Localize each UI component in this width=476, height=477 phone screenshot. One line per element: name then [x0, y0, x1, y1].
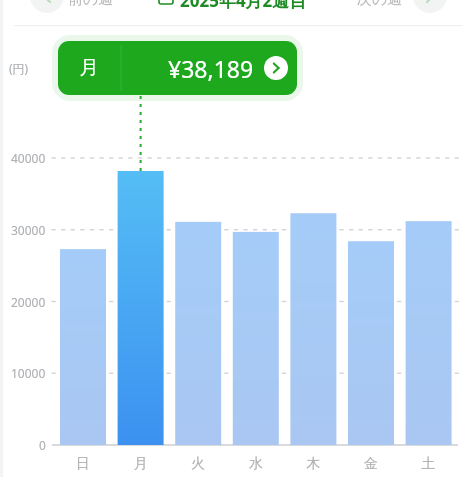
button[interactable]: 次の週 [350, 0, 460, 26]
button[interactable]: 月 ¥38,189 の詳細を見る [58, 41, 297, 95]
button[interactable]: 2025年4月2週目 を選択 [150, 0, 330, 26]
button[interactable]: 前の週 [20, 0, 130, 26]
